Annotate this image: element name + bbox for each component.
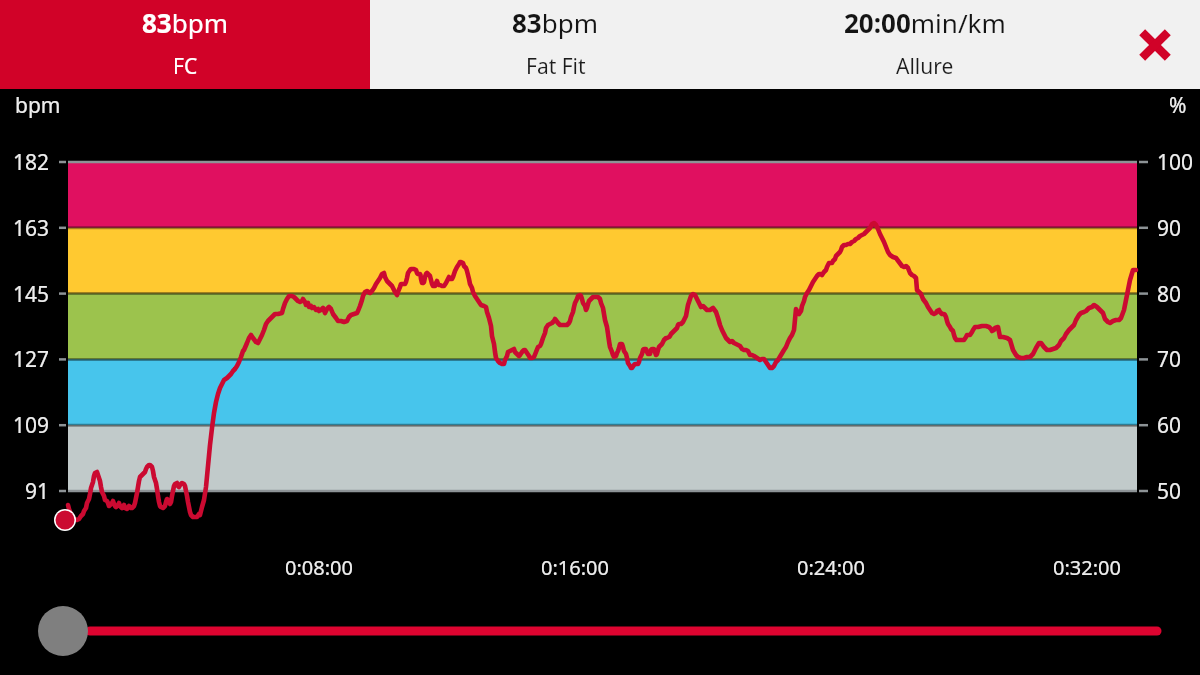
staticText: FC xyxy=(173,52,198,81)
staticText: 60 xyxy=(1157,411,1182,440)
staticText: 83bpm xyxy=(512,5,599,40)
staticText: 90 xyxy=(1157,214,1182,243)
staticText: 0:08:00 xyxy=(285,554,353,581)
staticText: 0:24:00 xyxy=(797,554,865,581)
staticText: Allure xyxy=(896,52,954,81)
staticText: Fat Fit xyxy=(526,52,586,81)
staticText: 83bpm xyxy=(142,5,229,40)
staticText: 20:00min/km xyxy=(844,5,1006,40)
button[interactable]: Timeline position xyxy=(38,606,88,656)
staticText: 91 xyxy=(0,477,49,506)
staticText: 0:16:00 xyxy=(541,554,609,581)
staticText: % xyxy=(1169,91,1187,120)
staticText: 80 xyxy=(1157,280,1182,309)
staticText: 50 xyxy=(1157,477,1182,506)
staticText: bpm xyxy=(15,91,61,120)
staticText: 145 xyxy=(0,280,49,309)
staticText: 100 xyxy=(1157,148,1194,177)
staticText: 182 xyxy=(0,148,49,177)
button[interactable]: 83bpm xyxy=(0,0,370,89)
staticText: 163 xyxy=(0,214,49,243)
button[interactable]: 20:00min/km xyxy=(740,0,1110,89)
staticText: 0:32:00 xyxy=(1053,554,1121,581)
button[interactable]: 83bpm xyxy=(370,0,740,89)
staticText: 70 xyxy=(1157,345,1182,374)
staticText: 127 xyxy=(0,345,49,374)
button[interactable]: Close xyxy=(1110,0,1200,89)
staticText: 109 xyxy=(0,411,49,440)
